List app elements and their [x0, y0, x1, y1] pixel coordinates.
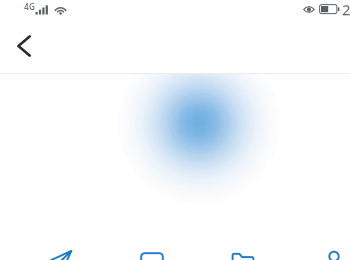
button[interactable]: Account — [322, 249, 346, 260]
staticText: 4G — [24, 2, 35, 12]
button[interactable]: Send — [49, 249, 73, 260]
button[interactable]: Files — [231, 249, 255, 260]
button[interactable]: Back — [8, 26, 40, 66]
staticText: 2 — [342, 0, 350, 19]
button[interactable]: Cards — [140, 249, 164, 260]
